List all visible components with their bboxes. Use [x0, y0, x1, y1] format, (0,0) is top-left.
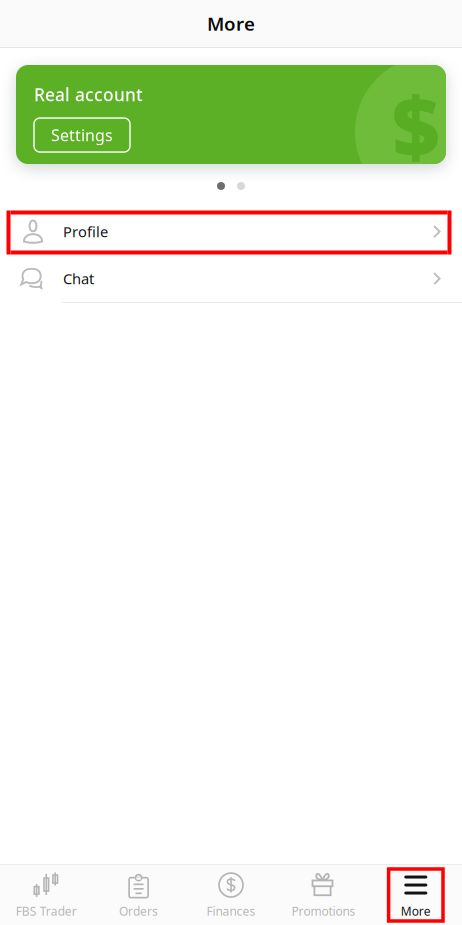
- staticText: Profile: [63, 222, 108, 241]
- staticText: Settings: [51, 124, 113, 146]
- button[interactable]: Chat: [0, 255, 462, 302]
- staticText: More: [401, 903, 431, 919]
- staticText: FBS Trader: [16, 903, 77, 919]
- staticText: Chat: [63, 269, 94, 288]
- staticText: Orders: [119, 903, 158, 919]
- button[interactable]: FBS Trader: [0, 869, 92, 921]
- button[interactable]: Settings: [34, 118, 130, 152]
- staticText: Real account: [34, 83, 143, 106]
- staticText: More: [207, 11, 255, 36]
- staticText: Finances: [206, 903, 255, 919]
- button[interactable]: More: [370, 869, 462, 921]
- button[interactable]: Orders: [92, 869, 185, 921]
- button[interactable]: Finances: [185, 869, 277, 921]
- staticText: Promotions: [291, 903, 355, 919]
- button[interactable]: Profile: [0, 208, 462, 255]
- button[interactable]: Promotions: [277, 869, 370, 921]
- staticText: $: [392, 70, 440, 180]
